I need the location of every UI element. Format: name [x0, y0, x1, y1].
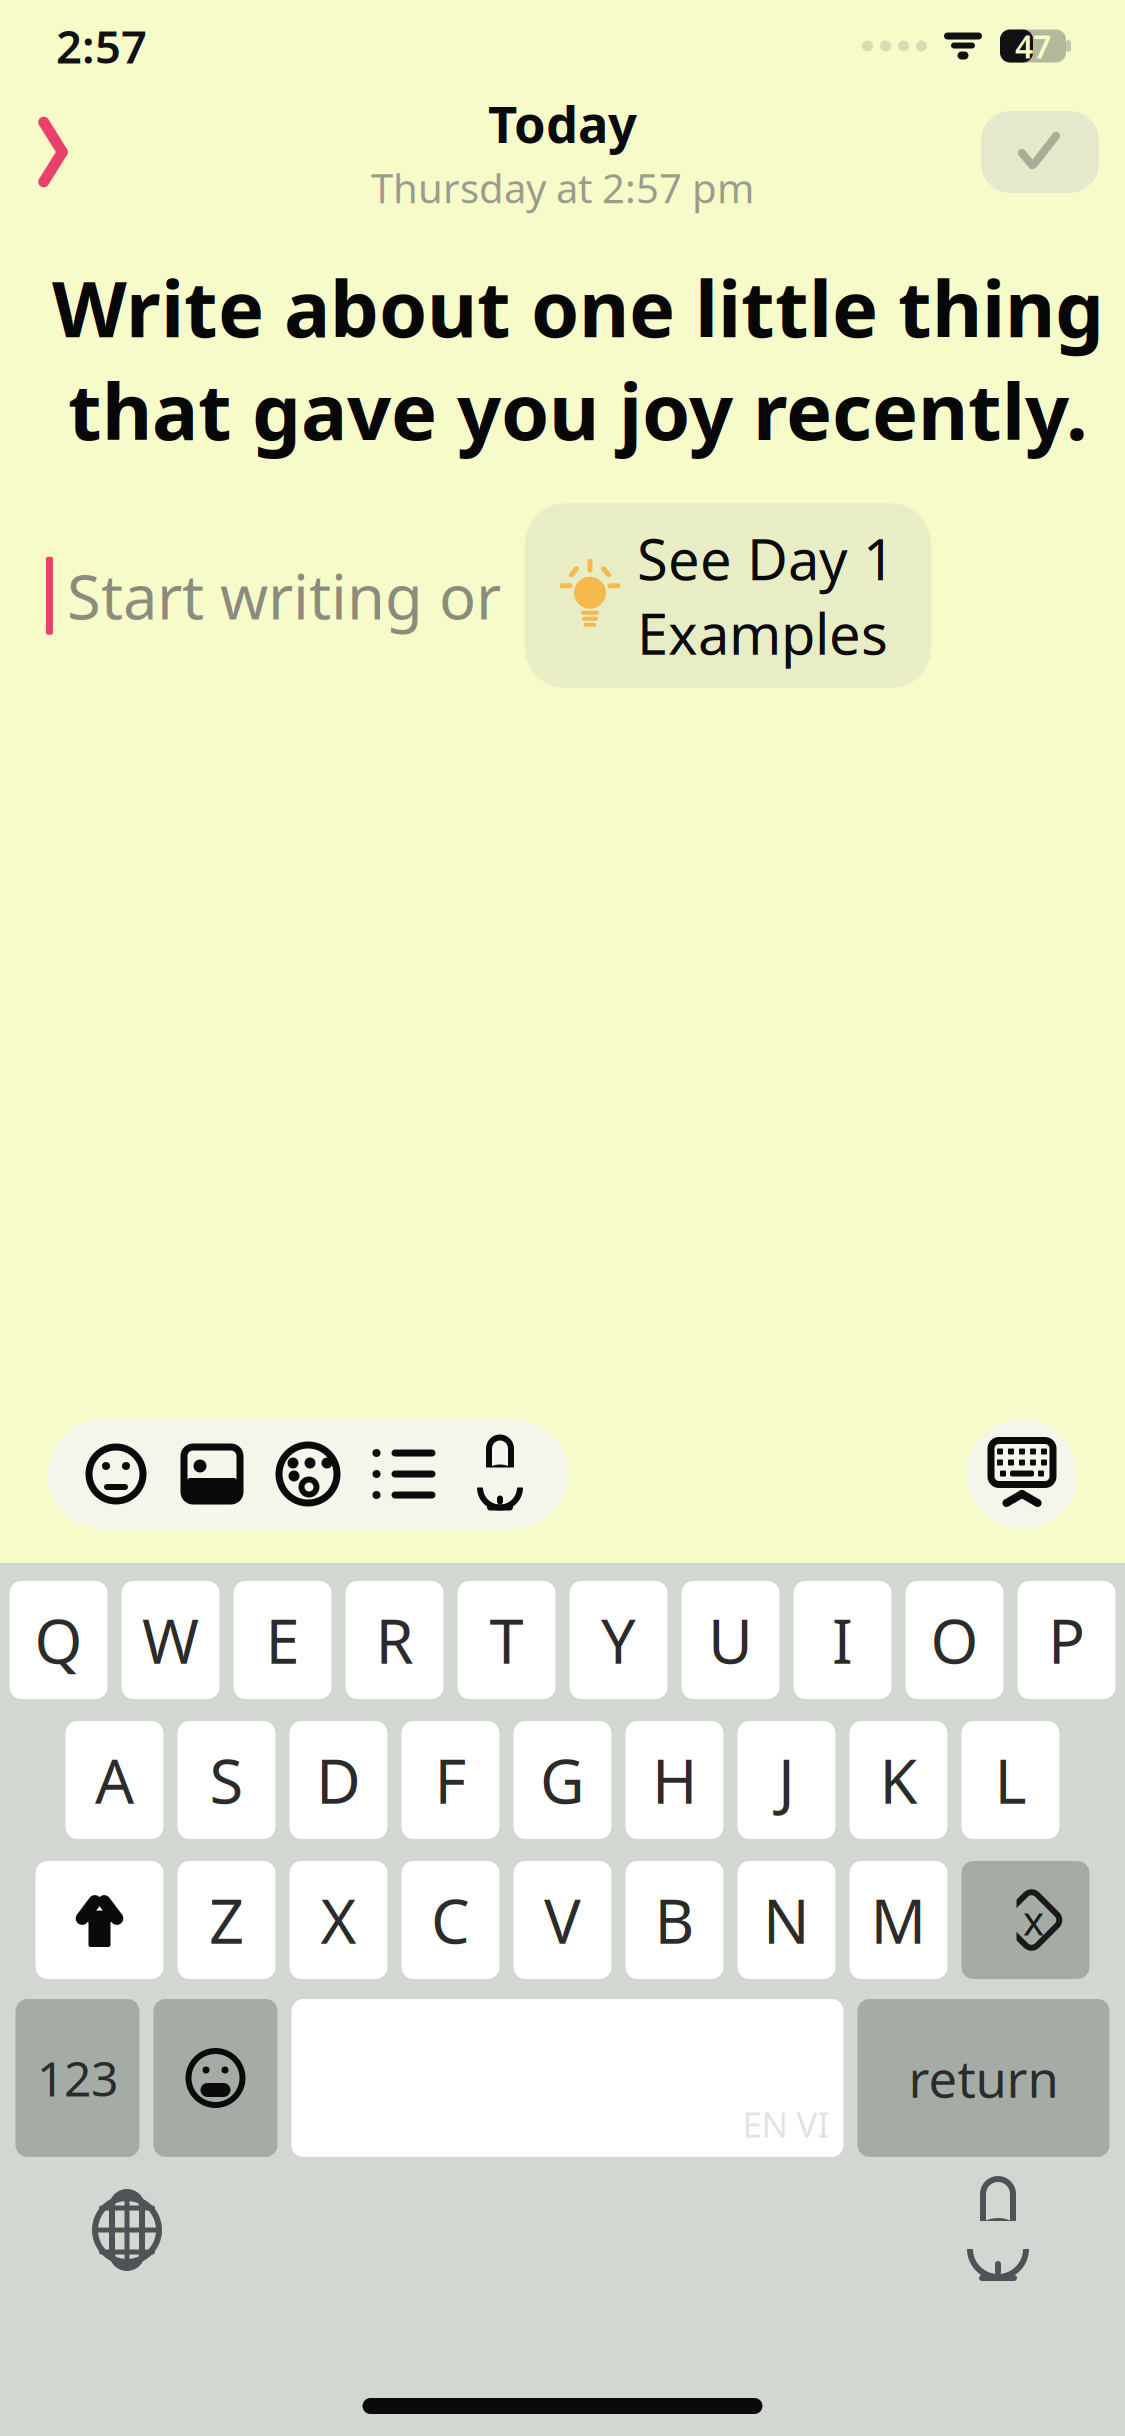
- staticText: return: [908, 2044, 1058, 2112]
- button[interactable]: M: [849, 1861, 947, 1979]
- staticText: G: [540, 1739, 585, 1821]
- button[interactable]: Dictate: [933, 2175, 1063, 2285]
- button[interactable]: V: [513, 1861, 611, 1979]
- button[interactable]: Done: [981, 111, 1099, 193]
- button[interactable]: N: [737, 1861, 835, 1979]
- button[interactable]: return: [857, 1999, 1109, 2157]
- button[interactable]: Mood: [68, 1419, 164, 1529]
- staticText: 123: [37, 2046, 118, 2110]
- button[interactable]: Checklist: [356, 1419, 452, 1529]
- button[interactable]: P: [1017, 1581, 1115, 1699]
- staticText: W: [142, 1599, 199, 1681]
- staticText: Write about one little thing: [52, 256, 1104, 359]
- staticText: H: [652, 1739, 697, 1821]
- staticText: that gave you joy recently.: [68, 359, 1088, 461]
- button[interactable]: Back: [22, 116, 84, 188]
- staticText: x: [1023, 1893, 1044, 1946]
- staticText: A: [95, 1739, 134, 1821]
- button[interactable]: C: [401, 1861, 499, 1979]
- button[interactable]: R: [345, 1581, 443, 1699]
- staticText: T: [489, 1599, 523, 1681]
- button[interactable]: Q: [9, 1581, 107, 1699]
- button[interactable]: L: [961, 1721, 1059, 1839]
- staticText: X: [320, 1879, 356, 1961]
- button[interactable]: Delete: [961, 1861, 1089, 1979]
- button[interactable]: H: [625, 1721, 723, 1839]
- staticText: Q: [34, 1599, 82, 1681]
- staticText: E: [265, 1599, 299, 1681]
- staticText: N: [763, 1879, 810, 1961]
- button[interactable]: B: [625, 1861, 723, 1979]
- staticText: Thursday at 2:57 pm: [371, 161, 754, 214]
- button[interactable]: Add photo: [164, 1419, 260, 1529]
- button[interactable]: K: [849, 1721, 947, 1839]
- button[interactable]: G: [513, 1721, 611, 1839]
- staticText: EN VI: [742, 2101, 829, 2147]
- staticText: I: [832, 1599, 853, 1681]
- staticText: See Day 1 Examples: [637, 521, 895, 670]
- staticText: Y: [601, 1599, 636, 1681]
- button[interactable]: D: [289, 1721, 387, 1839]
- button[interactable]: Next keyboard: [62, 2175, 192, 2285]
- button[interactable]: T: [457, 1581, 555, 1699]
- staticText: V: [544, 1879, 581, 1961]
- button[interactable]: I: [793, 1581, 891, 1699]
- button[interactable]: S: [177, 1721, 275, 1839]
- button[interactable]: Shift: [35, 1861, 163, 1979]
- staticText: 2:57: [56, 16, 147, 76]
- staticText: F: [434, 1739, 466, 1821]
- button[interactable]: U: [681, 1581, 779, 1699]
- staticText: S: [209, 1739, 243, 1821]
- staticText: D: [316, 1739, 361, 1821]
- staticText: U: [708, 1599, 753, 1681]
- button[interactable]: Template: [260, 1419, 356, 1529]
- button[interactable]: J: [737, 1721, 835, 1839]
- button[interactable]: Record audio: [452, 1419, 548, 1529]
- staticText: Z: [209, 1879, 244, 1961]
- staticText: O: [930, 1599, 978, 1681]
- button[interactable]: Emoji: [153, 1999, 277, 2157]
- button[interactable]: A: [65, 1721, 163, 1839]
- button[interactable]: Z: [177, 1861, 275, 1979]
- staticText: P: [1048, 1599, 1085, 1681]
- staticText: K: [879, 1739, 917, 1821]
- staticText: R: [375, 1599, 413, 1681]
- button[interactable]: Y: [569, 1581, 667, 1699]
- staticText: B: [654, 1879, 694, 1961]
- staticText: J: [778, 1739, 795, 1821]
- staticText: M: [870, 1879, 926, 1961]
- staticText: Start writing or: [67, 555, 501, 636]
- button[interactable]: F: [401, 1721, 499, 1839]
- button[interactable]: See Day 1 Examples: [525, 503, 931, 688]
- button[interactable]: W: [121, 1581, 219, 1699]
- button[interactable]: Hide keyboard: [967, 1419, 1077, 1529]
- button[interactable]: 123: [15, 1999, 139, 2157]
- staticText: Today: [488, 90, 637, 157]
- staticText: 47: [1015, 25, 1051, 67]
- staticText: C: [431, 1879, 470, 1961]
- button[interactable]: E: [233, 1581, 331, 1699]
- button[interactable]: O: [905, 1581, 1003, 1699]
- button[interactable]: X: [289, 1861, 387, 1979]
- staticText: L: [994, 1739, 1026, 1821]
